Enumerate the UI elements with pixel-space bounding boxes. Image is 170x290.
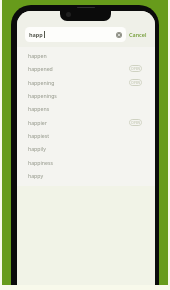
button[interactable]: Clear search	[116, 32, 122, 38]
staticText: happenings	[28, 92, 57, 99]
button[interactable]: Cancel	[127, 29, 149, 40]
staticText: OPEN	[131, 80, 141, 85]
button[interactable]: happenings	[17, 89, 155, 102]
button[interactable]: happily	[17, 142, 155, 155]
button[interactable]: happens	[17, 102, 155, 115]
staticText: happiness	[28, 159, 53, 166]
button[interactable]: happiest	[17, 129, 155, 142]
staticText: happiest	[28, 132, 50, 139]
button[interactable]: happening	[17, 76, 155, 89]
staticText: happens	[28, 105, 50, 112]
staticText: happy	[28, 172, 44, 179]
staticText: happ	[29, 31, 43, 38]
button[interactable]: happy	[17, 169, 155, 182]
staticText: happen	[28, 52, 47, 59]
staticText: happened	[28, 65, 53, 72]
button[interactable]: happiness	[17, 156, 155, 169]
button[interactable]: Insert word	[129, 79, 142, 86]
button[interactable]: Insert word	[129, 119, 142, 126]
button[interactable]: happier	[17, 116, 155, 129]
button[interactable]: happen	[17, 49, 155, 62]
staticText: OPEN	[131, 66, 141, 71]
button[interactable]: happ	[25, 27, 126, 42]
staticText: OPEN	[131, 120, 141, 125]
staticText: happier	[28, 119, 47, 126]
staticText: Cancel	[129, 31, 147, 38]
button[interactable]: happened	[17, 62, 155, 75]
button[interactable]: Insert word	[129, 65, 142, 72]
staticText: happening	[28, 79, 55, 86]
staticText: happily	[28, 145, 46, 152]
